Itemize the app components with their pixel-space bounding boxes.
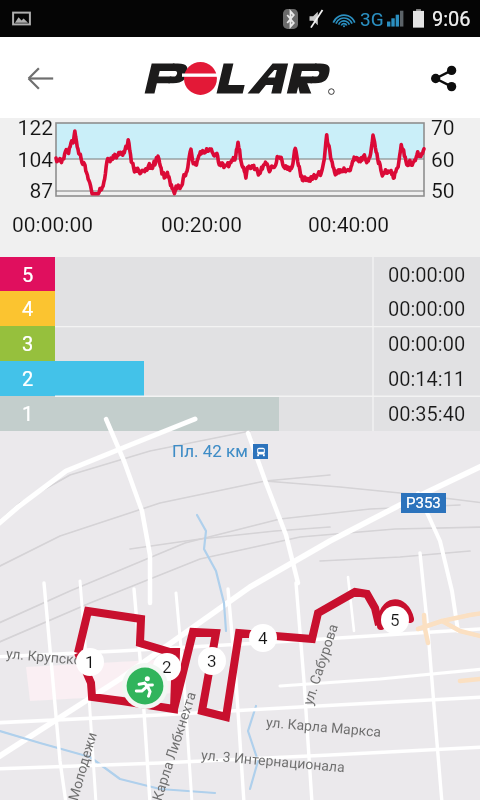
- staticText: 1: [85, 652, 95, 672]
- staticText: 00:35:40: [388, 402, 466, 425]
- staticText: 00:00:00: [388, 297, 466, 320]
- staticText: 1: [22, 402, 34, 425]
- button[interactable]: 4: [0, 291, 480, 326]
- staticText: ул. 3 Интернационала: [201, 747, 345, 775]
- staticText: 104: [17, 148, 53, 173]
- button[interactable]: Share: [415, 50, 471, 106]
- staticText: 87: [29, 179, 53, 204]
- staticText: 3: [22, 332, 34, 355]
- button[interactable]: Activity start: [122, 663, 168, 709]
- staticText: 60: [431, 148, 455, 173]
- staticText: 122: [17, 116, 53, 141]
- button[interactable]: Back: [12, 50, 68, 106]
- button[interactable]: 3: [0, 326, 480, 361]
- staticText: ул. Сабурова: [300, 621, 341, 707]
- staticText: 4: [258, 628, 268, 648]
- staticText: 00:00:00: [12, 213, 93, 238]
- staticText: 2: [162, 657, 172, 677]
- staticText: P353: [406, 494, 441, 512]
- staticText: 3G: [360, 8, 384, 30]
- staticText: 00:00:00: [388, 263, 466, 286]
- button[interactable]: 5: [0, 257, 480, 291]
- staticText: 4: [22, 297, 34, 320]
- staticText: 5: [22, 263, 34, 286]
- staticText: ул. Карла Маркса: [265, 714, 382, 740]
- staticText: 3: [207, 651, 217, 671]
- button[interactable]: 2: [0, 361, 480, 396]
- staticText: 5: [390, 610, 400, 630]
- staticText: 00:20:00: [161, 213, 242, 238]
- staticText: 00:40:00: [308, 213, 389, 238]
- staticText: 50: [431, 179, 455, 204]
- button[interactable]: 1: [0, 396, 480, 431]
- staticText: ул. Крупской: [5, 645, 91, 669]
- staticText: Молодежи: [65, 730, 100, 800]
- staticText: 70: [431, 116, 455, 141]
- staticText: Пл. 42 км: [172, 441, 248, 461]
- staticText: Карла Либкнехта: [149, 689, 199, 800]
- staticText: 2: [22, 367, 34, 390]
- staticText: 00:14:11: [388, 367, 466, 390]
- staticText: 9:06: [432, 7, 471, 30]
- staticText: 00:00:00: [388, 332, 466, 355]
- button[interactable]: Пл. 42 км: [0, 431, 480, 800]
